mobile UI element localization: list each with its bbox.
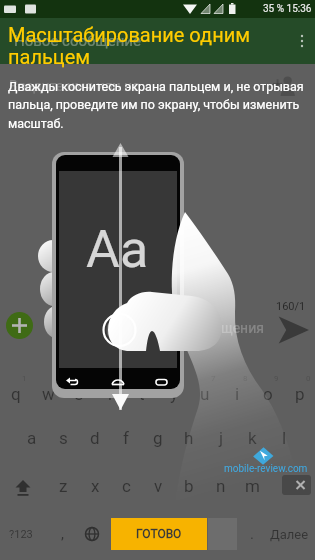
- staticText: x: [91, 476, 100, 496]
- staticText: 35 % 15:36: [263, 3, 312, 15]
- button[interactable]: j: [205, 425, 237, 451]
- button[interactable]: n: [205, 473, 237, 499]
- staticText: Новое сообщение: [14, 32, 141, 50]
- button[interactable]: Shift: [8, 473, 38, 503]
- button[interactable]: u: [189, 374, 221, 408]
- staticText: d: [90, 428, 100, 448]
- staticText: ,: [61, 525, 64, 543]
- staticText: 7: [211, 374, 216, 383]
- staticText: h: [184, 428, 194, 448]
- staticText: r: [108, 384, 114, 404]
- staticText: t: [139, 384, 145, 404]
- staticText: f: [123, 428, 129, 448]
- button[interactable]: ГОТОВО: [111, 518, 207, 550]
- button[interactable]: m: [236, 473, 268, 499]
- staticText: l: [282, 428, 287, 448]
- button[interactable]: Change language: [78, 518, 106, 550]
- staticText: z: [59, 476, 68, 496]
- staticText: mobile-review.com: [224, 463, 308, 475]
- staticText: 6: [180, 374, 185, 383]
- button[interactable]: d: [79, 425, 111, 451]
- staticText: Введите имя или но: [9, 78, 141, 94]
- staticText: a: [27, 428, 37, 448]
- button[interactable]: f: [110, 425, 142, 451]
- staticText: 2: [54, 374, 59, 383]
- staticText: Aa: [86, 219, 149, 280]
- button[interactable]: k: [236, 425, 268, 451]
- button[interactable]: e: [63, 374, 95, 408]
- button[interactable]: v: [142, 473, 174, 499]
- staticText: m: [245, 476, 260, 496]
- staticText: j: [219, 428, 224, 448]
- button[interactable]: t: [126, 374, 158, 408]
- staticText: ?123: [9, 528, 33, 541]
- button[interactable]: r: [95, 374, 127, 408]
- staticText: q: [11, 384, 21, 404]
- staticText: k: [248, 428, 257, 448]
- button[interactable]: Send: [276, 313, 310, 347]
- staticText: y: [170, 384, 179, 404]
- button[interactable]: c: [110, 473, 142, 499]
- staticText: 160/1: [276, 300, 306, 313]
- button[interactable]: Backspace: [282, 475, 311, 495]
- button[interactable]: x: [79, 473, 111, 499]
- staticText: c: [122, 476, 131, 496]
- staticText: i: [235, 384, 240, 404]
- staticText: v: [154, 476, 163, 496]
- button[interactable]: s: [47, 425, 79, 451]
- staticText: Текст сообщения: [150, 320, 264, 336]
- button[interactable]: b: [173, 473, 205, 499]
- staticText: Далее: [270, 527, 309, 542]
- staticText: 8: [243, 374, 248, 383]
- staticText: 9: [274, 374, 279, 383]
- staticText: 4: [117, 374, 122, 383]
- button[interactable]: a: [16, 425, 48, 451]
- button[interactable]: o: [252, 374, 284, 408]
- button[interactable]: Далее: [264, 518, 314, 550]
- staticText: 0: [306, 374, 311, 383]
- staticText: 1: [22, 374, 27, 383]
- button[interactable]: l: [268, 425, 300, 451]
- staticText: g: [153, 428, 163, 448]
- staticText: Масштабирование одним пальцем: [8, 23, 289, 69]
- staticText: n: [216, 476, 226, 496]
- button[interactable]: ?123: [3, 518, 39, 550]
- button[interactable]: Add attachment: [6, 312, 33, 339]
- staticText: .: [250, 525, 254, 543]
- button[interactable]: More options: [289, 20, 315, 62]
- button[interactable]: g: [142, 425, 174, 451]
- button[interactable]: y: [158, 374, 190, 408]
- staticText: s: [59, 428, 68, 448]
- staticText: p: [295, 384, 305, 404]
- button[interactable]: w: [32, 374, 64, 408]
- staticText: Дважды коснитесь экрана пальцем и, не от…: [8, 79, 306, 131]
- staticText: e: [74, 384, 84, 404]
- staticText: u: [200, 384, 210, 404]
- button[interactable]: q: [0, 374, 32, 408]
- staticText: w: [42, 384, 55, 404]
- button[interactable]: h: [173, 425, 205, 451]
- staticText: o: [263, 384, 273, 404]
- staticText: b: [184, 476, 194, 496]
- button[interactable]: z: [47, 473, 79, 499]
- button[interactable]: p: [284, 374, 315, 408]
- button[interactable]: i: [221, 374, 253, 408]
- staticText: ГОТОВО: [136, 527, 182, 541]
